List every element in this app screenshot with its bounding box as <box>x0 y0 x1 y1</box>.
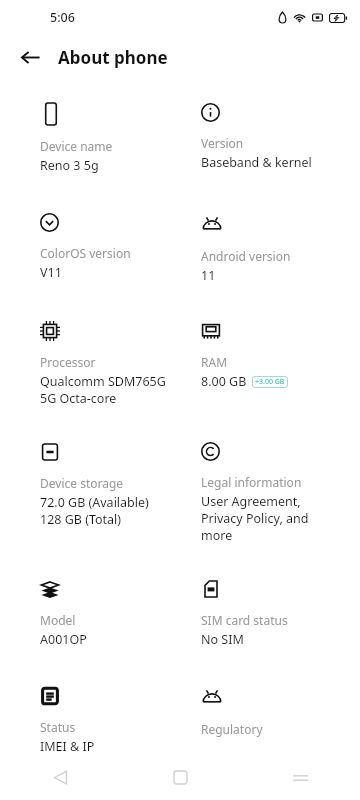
staticText: 72.0 GB (Available) <box>40 494 149 511</box>
button[interactable]: Home <box>120 755 240 800</box>
staticText: Android version <box>201 248 291 264</box>
button[interactable]: Processor <box>40 321 192 407</box>
button[interactable]: Model <box>40 579 192 648</box>
staticText: Model <box>40 612 76 628</box>
button[interactable]: RAM <box>201 321 353 390</box>
button[interactable]: Version <box>201 103 353 171</box>
staticText: 11 <box>201 267 216 284</box>
staticText: Privacy Policy, and <box>201 510 309 527</box>
staticText: Baseband & kernel <box>201 154 312 171</box>
staticText: more <box>201 527 233 544</box>
staticText: User Agreement, <box>201 493 301 510</box>
staticText: No SIM <box>201 631 244 648</box>
staticText: 5G Octa-core <box>40 390 117 407</box>
staticText: +3.00 GB <box>255 377 285 387</box>
staticText: Version <box>201 135 244 151</box>
staticText: 8.00 GB <box>201 373 247 390</box>
staticText: RAM <box>201 354 228 370</box>
staticText: Device storage <box>40 475 124 491</box>
staticText: Qualcomm SDM765G <box>40 373 166 390</box>
staticText: About phone <box>58 46 168 69</box>
button[interactable]: Status <box>40 686 192 755</box>
staticText: Reno 3 5g <box>40 157 99 174</box>
staticText: 128 GB (Total) <box>40 511 122 528</box>
staticText: Device name <box>40 138 113 154</box>
button[interactable]: Regulatory <box>201 686 353 740</box>
staticText: V11 <box>40 264 62 281</box>
button[interactable]: Legal information <box>201 442 353 544</box>
button[interactable]: Android version <box>201 213 353 284</box>
staticText: Legal information <box>201 474 302 490</box>
staticText: Regulatory <box>201 721 263 737</box>
staticText: Processor <box>40 354 96 370</box>
staticText: SIM card status <box>201 612 288 628</box>
button[interactable]: ColorOS version <box>40 213 192 281</box>
staticText: 5:06 <box>50 9 75 26</box>
button[interactable]: SIM card status <box>201 579 353 648</box>
staticText: Status <box>40 719 76 735</box>
button[interactable]: Back <box>12 39 48 75</box>
staticText: IMEI & IP <box>40 738 95 755</box>
button[interactable]: Device name <box>40 103 192 174</box>
staticText: A001OP <box>40 631 87 648</box>
staticText: ColorOS version <box>40 245 131 261</box>
button[interactable]: Recents <box>240 755 360 800</box>
button[interactable]: Device storage <box>40 442 192 528</box>
button[interactable]: Back <box>0 755 120 800</box>
